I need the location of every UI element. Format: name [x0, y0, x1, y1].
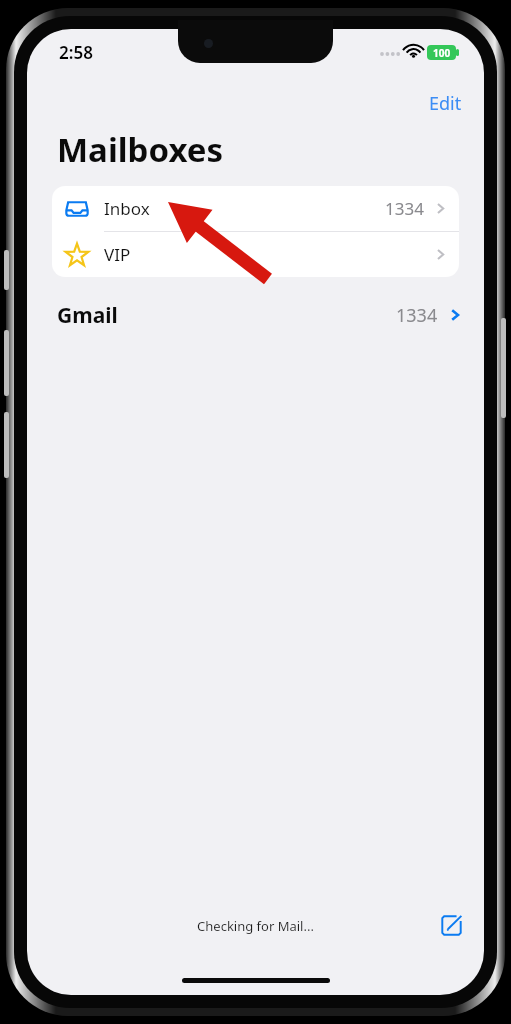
staticText: Mailboxes: [57, 127, 224, 172]
staticText: Gmail: [57, 301, 118, 330]
staticText: Checking for Mail...: [197, 917, 314, 935]
button[interactable]: VIP: [52, 232, 459, 277]
staticText: 1334: [385, 197, 424, 220]
button[interactable]: Gmail: [27, 295, 484, 335]
staticText: 1334: [396, 303, 438, 328]
staticText: VIP: [104, 243, 131, 266]
button[interactable]: Inbox: [52, 186, 459, 231]
staticText: Inbox: [104, 197, 150, 220]
button[interactable]: Compose new message: [433, 907, 470, 944]
staticText: 100: [433, 46, 451, 60]
button[interactable]: Edit: [421, 89, 470, 115]
staticText: Edit: [429, 91, 462, 113]
staticText: 2:58: [59, 41, 93, 64]
